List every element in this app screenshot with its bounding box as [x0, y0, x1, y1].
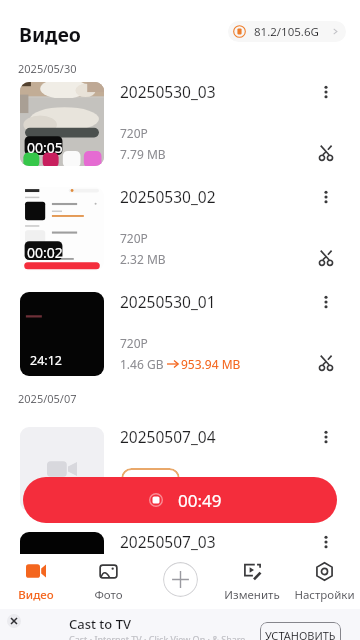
- staticText: УСТАНОВИТЬ: [265, 628, 336, 640]
- button[interactable]: Processing: [121, 468, 180, 489]
- staticText: 2.32 MB: [120, 251, 166, 267]
- button[interactable]: [0, 186, 360, 291]
- button[interactable]: [0, 426, 360, 531]
- staticText: 720P: [120, 335, 148, 351]
- staticText: 720P: [120, 125, 148, 141]
- button[interactable]: Trim video: [312, 244, 340, 272]
- button[interactable]: [0, 531, 360, 554]
- button[interactable]: More options: [312, 78, 340, 106]
- button[interactable]: New recording: [163, 562, 198, 597]
- staticText: Настройки: [294, 587, 355, 603]
- staticText: 2025/05/07: [18, 391, 77, 406]
- button[interactable]: Stop recording 00:49: [23, 477, 337, 523]
- button[interactable]: Trim video: [312, 139, 340, 167]
- button[interactable]: Изменить: [216, 554, 288, 607]
- button[interactable]: Trim video: [312, 349, 340, 377]
- button[interactable]: [0, 81, 360, 186]
- staticText: Cast · Internet TV · Click View On · & S…: [69, 633, 246, 640]
- button[interactable]: Фото: [72, 554, 144, 607]
- staticText: Фото: [94, 587, 123, 603]
- staticText: 20250507_04: [120, 426, 216, 447]
- staticText: 20250530_02: [120, 186, 216, 207]
- staticText: Cast to TV: [69, 615, 131, 633]
- staticText: 720P: [120, 230, 148, 246]
- staticText: 20250530_01: [120, 291, 216, 312]
- staticText: 1.46 GB: [120, 356, 164, 372]
- button[interactable]: More options: [312, 288, 340, 316]
- staticText: 20250507_03: [120, 531, 216, 552]
- button[interactable]: More options: [312, 528, 340, 554]
- staticText: 24:12: [30, 352, 62, 369]
- button[interactable]: More options: [312, 183, 340, 211]
- staticText: Видео: [18, 587, 54, 603]
- staticText: 00:05: [27, 138, 63, 157]
- button[interactable]: УСТАНОВИТЬ: [260, 622, 341, 640]
- button[interactable]: Настройки: [288, 554, 360, 607]
- staticText: 20250530_03: [120, 81, 216, 102]
- button[interactable]: [0, 291, 360, 396]
- staticText: 953.94 MB: [181, 356, 241, 372]
- staticText: Видео: [19, 21, 81, 48]
- button[interactable]: Close ad: [7, 614, 21, 628]
- staticText: 00:02: [27, 243, 63, 262]
- staticText: 00:49: [178, 489, 222, 512]
- staticText: Изменить: [224, 587, 280, 603]
- staticText: 81.2/105.6G: [254, 24, 319, 40]
- staticText: 7.79 MB: [120, 146, 166, 162]
- button[interactable]: Видео: [0, 554, 72, 607]
- button[interactable]: More options: [312, 423, 340, 451]
- button[interactable]: 81.2/105.6G: [228, 21, 346, 42]
- staticText: 2025/05/30: [18, 61, 77, 76]
